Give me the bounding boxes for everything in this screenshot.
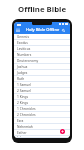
button[interactable]: Menu (16, 28, 20, 32)
staticText: Genesis (17, 35, 29, 39)
staticText: Job (17, 136, 22, 138)
button[interactable]: Nehemiah (14, 124, 70, 130)
button[interactable]: Joshua (14, 64, 70, 70)
button[interactable]: Search (62, 29, 65, 32)
button[interactable]: Numbers (14, 52, 70, 58)
staticText: Holy Bible Offline (26, 27, 60, 32)
button[interactable]: Ezra (14, 118, 70, 124)
staticText: 2 Kings (17, 101, 29, 105)
button[interactable]: Ruth (14, 76, 70, 82)
staticText: 1 Kings (17, 95, 29, 99)
button[interactable]: 2 Kings (14, 100, 70, 106)
button[interactable]: Add bookmark (60, 129, 65, 134)
staticText: Leviticus (17, 47, 31, 51)
button[interactable]: 2 Chronicles (14, 112, 70, 118)
staticText: Exodus (17, 41, 28, 45)
staticText: Nehemiah (17, 125, 33, 129)
button[interactable]: Genesis (14, 34, 70, 40)
button[interactable]: Deuteronomy (14, 58, 70, 64)
staticText: Judges (17, 71, 28, 75)
staticText: 2 Samuel (17, 89, 31, 93)
button[interactable]: 1 Samuel (14, 82, 70, 88)
button[interactable]: 1 Kings (14, 94, 70, 100)
staticText: 1 Chronicles (17, 107, 36, 111)
staticText: Joshua (17, 65, 28, 69)
staticText: Ruth (17, 77, 25, 81)
staticText: Ezra (17, 119, 24, 123)
staticText: Esther (17, 131, 27, 135)
staticText: 2 Chronicles (17, 113, 36, 117)
staticText: Offline Bible (0, 4, 84, 15)
button[interactable]: 1 Chronicles (14, 106, 70, 112)
button[interactable]: Leviticus (14, 46, 70, 52)
button[interactable]: Esther (14, 130, 70, 136)
staticText: Numbers (17, 53, 32, 57)
staticText: Deuteronomy (17, 59, 39, 63)
staticText: 1 Samuel (17, 83, 31, 87)
button[interactable]: Job (14, 136, 70, 138)
button[interactable]: 2 Samuel (14, 88, 70, 94)
button[interactable]: Judges (14, 70, 70, 76)
button[interactable]: Exodus (14, 40, 70, 46)
